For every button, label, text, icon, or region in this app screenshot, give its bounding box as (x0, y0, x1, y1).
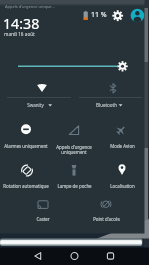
staticText: Caster (36, 216, 50, 222)
button[interactable] (130, 8, 145, 23)
staticText: Bluetooth (96, 102, 117, 108)
staticText: Appels d'urgence unique... (5, 4, 55, 9)
button[interactable]: Swanity (5, 78, 71, 111)
staticText: Mode Avion (110, 143, 135, 149)
staticText: Rotation automatique (3, 183, 49, 189)
staticText: 14:38 (3, 14, 40, 33)
staticText: Point d'accès (93, 216, 120, 222)
staticText: Swanity (27, 102, 44, 108)
button[interactable] (20, 247, 56, 265)
button[interactable]: Rotation automatique (2, 152, 50, 192)
staticText: Localisation (110, 183, 135, 189)
staticText: Alarmes uniquement (4, 143, 48, 149)
button[interactable]: Caster (19, 190, 67, 230)
staticText: 11 % (91, 10, 107, 20)
button[interactable] (56, 247, 93, 265)
button[interactable]: Mode Avion (98, 112, 146, 152)
staticText: Lampe de poche (57, 183, 92, 189)
button[interactable]: Appels d'urgence uniquement (50, 112, 98, 152)
staticText: Appels d'urgence uniquement (56, 144, 92, 156)
button[interactable]: Localisation (98, 152, 146, 192)
button[interactable]: Bluetooth (77, 78, 143, 111)
staticText: mardi 16 août (4, 31, 35, 37)
button[interactable]: Point d'accès (82, 190, 130, 230)
button[interactable] (0, 236, 143, 247)
button[interactable]: Alarmes uniquement (2, 112, 50, 152)
button[interactable]: Lampe de poche (50, 152, 98, 192)
button[interactable] (93, 247, 129, 265)
button[interactable] (6, 57, 132, 75)
button[interactable] (111, 9, 125, 23)
